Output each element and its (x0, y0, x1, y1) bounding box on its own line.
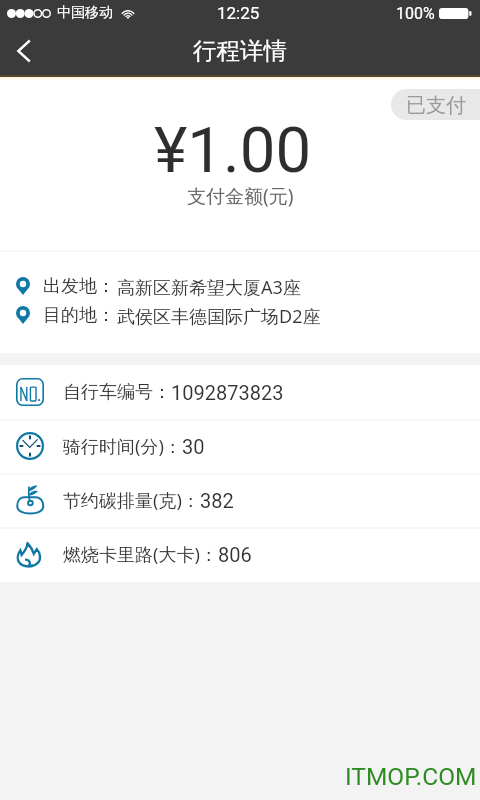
staticText: 100% (396, 4, 435, 23)
staticText: 30 (182, 435, 205, 458)
staticText: 12:25 (217, 3, 260, 23)
button[interactable]: 出发地： (0, 275, 480, 297)
staticText: 已支付 (406, 93, 466, 118)
staticText: 武侯区丰德国际广场D2座 (117, 304, 321, 326)
button[interactable]: 目的地： (0, 304, 480, 326)
staticText: 骑行时间(分)： (63, 434, 182, 459)
staticText: 行程详情 (193, 36, 287, 66)
staticText: 支付金额(元) (187, 183, 294, 209)
staticText: ITMOP.COM (345, 762, 477, 791)
staticText: 1092873823 (171, 381, 284, 404)
staticText: 高新区新希望大厦A3座 (117, 275, 301, 297)
staticText: 出发地： (43, 275, 115, 297)
button[interactable]: 自行车编号： (0, 378, 480, 406)
staticText: 中国移动 (57, 4, 113, 22)
staticText: 自行车编号： (63, 381, 171, 404)
button[interactable]: 节约碳排量(克)： (0, 486, 480, 514)
staticText: 806 (218, 543, 252, 566)
button[interactable]: 骑行时间(分)： (0, 432, 480, 460)
staticText: 节约碳排量(克)： (63, 488, 200, 513)
button[interactable]: 已支付 (391, 89, 480, 120)
staticText: 目的地： (43, 304, 115, 326)
button[interactable]: Back (0, 28, 46, 74)
staticText: 燃烧卡里路(大卡)： (63, 542, 218, 567)
button[interactable]: 燃烧卡里路(大卡)： (0, 540, 480, 568)
staticText: 382 (200, 489, 234, 512)
staticText: ¥1.00 (154, 113, 312, 187)
